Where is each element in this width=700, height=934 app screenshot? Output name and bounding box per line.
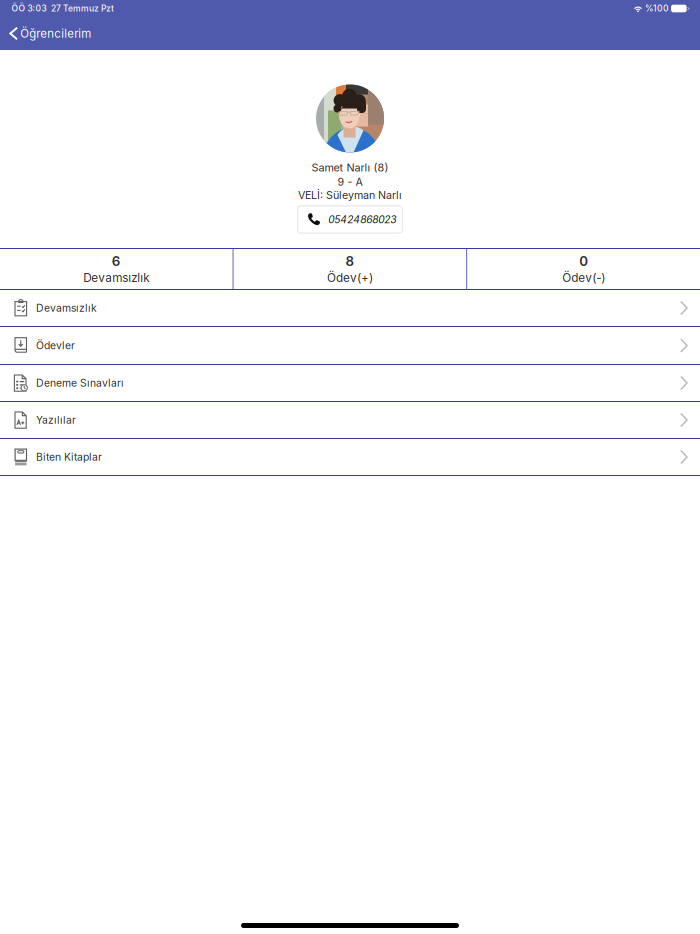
button[interactable]: Yazılılar (0, 402, 700, 438)
staticText: Ödev(-) (562, 271, 605, 285)
button[interactable]: 6 (0, 249, 233, 289)
button[interactable]: 0 (467, 249, 700, 289)
staticText: Devamsızlık (83, 271, 149, 285)
staticText: VELİ: Süleyman Narlı (298, 189, 402, 201)
button[interactable]: 8 (234, 249, 466, 289)
staticText: 6 (112, 253, 121, 269)
staticText: ÖÖ 3:03 (11, 3, 46, 14)
button[interactable]: Deneme Sınavları (0, 365, 700, 401)
staticText: Deneme Sınavları (36, 377, 124, 389)
button[interactable]: Öğrencilerim (0, 17, 101, 50)
staticText: 27 Temmuz Pzt (51, 3, 114, 14)
staticText: Ödev(+) (327, 271, 373, 285)
staticText: %100 (645, 3, 669, 14)
staticText: Yazılılar (36, 414, 76, 426)
staticText: 05424868023 (328, 213, 396, 226)
button[interactable]: Devamsızlık (0, 290, 700, 326)
staticText: 0 (579, 253, 588, 269)
staticText: Devamsızlık (36, 302, 97, 314)
button[interactable]: Ödevler (0, 327, 700, 364)
staticText: 9 - A (337, 175, 362, 188)
staticText: 8 (345, 253, 354, 269)
button[interactable]: Biten Kitaplar (0, 439, 700, 475)
button[interactable]: 05424868023 (298, 206, 402, 233)
staticText: Öğrencilerim (20, 27, 91, 40)
staticText: Ödevler (36, 339, 75, 352)
staticText: Biten Kitaplar (36, 451, 102, 463)
staticText: Samet Narlı (8) (311, 161, 388, 174)
